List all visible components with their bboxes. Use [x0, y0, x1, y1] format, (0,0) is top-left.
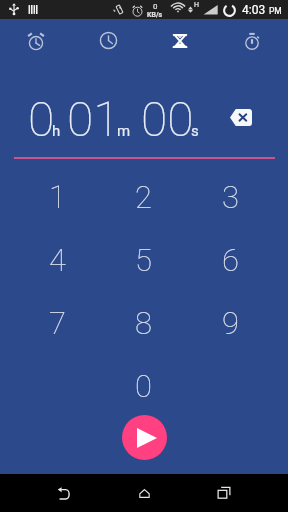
staticText: 0 [153, 2, 158, 11]
staticText: 0 [28, 91, 55, 147]
staticText: 3 [222, 179, 239, 215]
staticText: 5 [135, 242, 152, 278]
button[interactable]: Home [130, 474, 158, 512]
staticText: 9 [222, 305, 239, 341]
button[interactable]: 6 [187, 228, 274, 291]
staticText: 2 [135, 179, 152, 215]
staticText: s [191, 122, 199, 140]
button[interactable]: 0 [100, 354, 187, 417]
button[interactable]: Delete [227, 103, 255, 131]
button[interactable]: Clock [72, 19, 144, 60]
button[interactable]: 2 [100, 165, 187, 228]
button[interactable]: 9 [187, 291, 274, 354]
staticText: 4:03 [242, 3, 266, 17]
button[interactable]: Timer [144, 19, 216, 60]
staticText: 1 [49, 179, 66, 215]
staticText: 8 [135, 305, 152, 341]
staticText: 4 [49, 242, 66, 278]
button[interactable]: 7 [14, 291, 100, 354]
button[interactable]: Back [50, 474, 78, 512]
button[interactable]: Stopwatch [216, 19, 288, 60]
staticText: 00 [141, 91, 194, 147]
button[interactable]: 8 [100, 291, 187, 354]
button[interactable]: 3 [187, 165, 274, 228]
button[interactable]: 5 [100, 228, 187, 291]
button[interactable]: 4 [14, 228, 100, 291]
button[interactable]: 1 [14, 165, 100, 228]
staticText: 01 [67, 91, 120, 147]
button[interactable]: Recents [210, 474, 238, 512]
staticText: h [52, 122, 61, 140]
staticText: m [117, 122, 131, 140]
staticText: 7 [49, 305, 66, 341]
staticText: 0 [135, 368, 152, 404]
staticText: PM [269, 6, 282, 16]
staticText: KB/s [147, 11, 163, 19]
button[interactable]: Alarm [0, 19, 72, 60]
staticText: H [194, 1, 199, 9]
button[interactable]: Start timer [122, 415, 167, 460]
staticText: 6 [222, 242, 239, 278]
